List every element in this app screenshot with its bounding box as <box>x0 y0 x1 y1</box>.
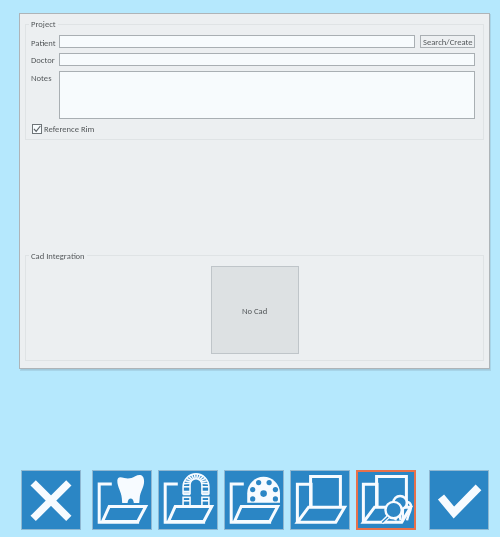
staticText: Doctor <box>31 55 55 65</box>
button[interactable] <box>59 35 415 48</box>
button[interactable]: Arch scan <box>158 470 218 530</box>
button[interactable]: Plate scan <box>224 470 284 530</box>
button[interactable]: Reference Rim <box>32 124 95 134</box>
button[interactable]: Inspect <box>356 470 416 530</box>
button[interactable]: Model <box>290 470 350 530</box>
staticText: Search/Create <box>423 37 473 47</box>
staticText: Cad Integration <box>31 251 85 261</box>
button[interactable] <box>59 71 475 119</box>
staticText: Project <box>31 19 56 29</box>
staticText: No Cad <box>242 306 268 316</box>
staticText: Notes <box>31 73 52 83</box>
button[interactable]: Search/Create <box>420 35 475 48</box>
button[interactable]: Cancel <box>21 470 81 530</box>
staticText: Patient <box>31 38 56 48</box>
button[interactable]: Tooth scan <box>92 470 152 530</box>
staticText: Reference Rim <box>44 124 95 134</box>
button[interactable]: No Cad <box>211 266 299 354</box>
button[interactable]: Confirm <box>429 470 489 530</box>
button[interactable] <box>59 53 475 66</box>
